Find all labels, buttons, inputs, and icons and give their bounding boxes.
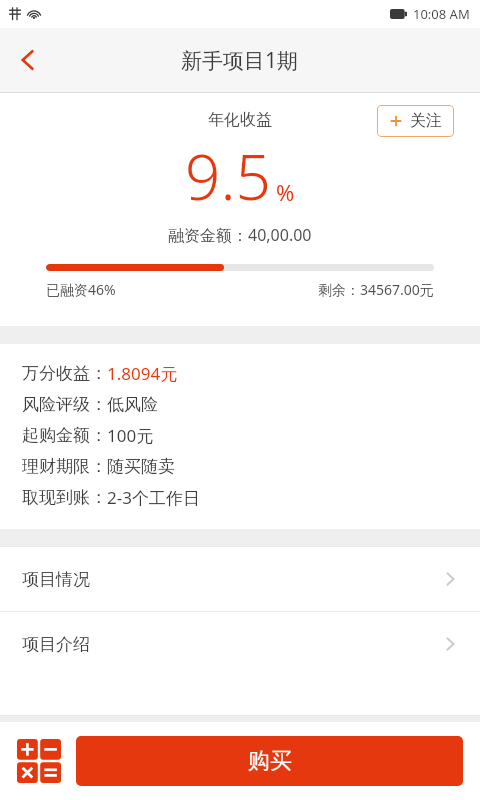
button[interactable]: 购买 — [76, 736, 463, 786]
staticText: 关注 — [410, 111, 442, 131]
staticText: 年化收益 — [208, 110, 272, 130]
staticText: 1.8094元 — [107, 362, 178, 385]
staticText: 100元 — [107, 424, 154, 447]
staticText: 低风险 — [107, 394, 158, 415]
staticText: % — [276, 177, 295, 207]
staticText: 起购金额： — [22, 425, 107, 446]
staticText: 2-3个工作日 — [107, 486, 200, 509]
staticText: 项目介绍 — [22, 634, 90, 655]
staticText: 已融资46% — [46, 280, 116, 299]
button[interactable]: Calculator — [16, 738, 62, 784]
staticText: 风险评级： — [22, 394, 107, 415]
staticText: 剩余：34567.00元 — [318, 280, 434, 299]
button[interactable]: 项目介绍 — [0, 612, 480, 676]
button[interactable]: Back — [0, 28, 56, 92]
staticText: 理财期限： — [22, 456, 107, 477]
staticText: 融资金额：40,00.00 — [168, 224, 312, 246]
staticText: 新手项目1期 — [181, 46, 299, 75]
staticText: 项目情况 — [22, 569, 90, 590]
button[interactable]: 关注 — [377, 105, 454, 137]
staticText: 10:08 AM — [413, 5, 470, 23]
staticText: 购买 — [248, 747, 292, 775]
button[interactable]: 项目情况 — [0, 547, 480, 611]
staticText: 9.5 — [185, 134, 271, 218]
staticText: 万分收益： — [22, 363, 107, 384]
staticText: 取现到账： — [22, 487, 107, 508]
staticText: 随买随卖 — [107, 456, 175, 477]
